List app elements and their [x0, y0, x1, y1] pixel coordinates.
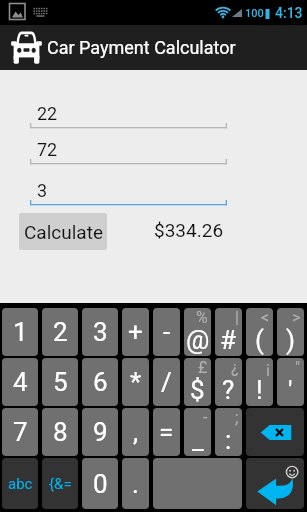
- button[interactable]: ": [277, 358, 304, 406]
- staticText: $334.26: [154, 219, 224, 241]
- button[interactable]: <: [246, 308, 273, 356]
- staticText: 1: [13, 317, 28, 347]
- staticText: _: [192, 425, 204, 455]
- staticText: :: [225, 425, 232, 455]
- staticText: -: [163, 317, 171, 347]
- button[interactable]: /: [153, 358, 180, 406]
- button[interactable]: [153, 458, 242, 509]
- button[interactable]: £: [184, 358, 211, 406]
- button[interactable]: 3: [82, 308, 118, 356]
- staticText: $: [190, 375, 205, 405]
- button[interactable]: *: [122, 358, 149, 406]
- button[interactable]: ¿: [215, 358, 242, 406]
- button[interactable]: 6: [82, 358, 118, 406]
- button[interactable]: abc: [2, 458, 38, 509]
- staticText: ;: [235, 408, 239, 427]
- button[interactable]: 9: [82, 408, 118, 456]
- staticText: 0: [93, 469, 108, 499]
- staticText: *: [130, 367, 142, 397]
- button[interactable]: 7: [2, 408, 38, 456]
- button[interactable]: 0: [82, 458, 118, 509]
- staticText: ¿: [231, 358, 239, 377]
- button[interactable]: +: [122, 308, 149, 356]
- staticText: -: [203, 408, 208, 427]
- staticText: 100: [245, 7, 264, 20]
- staticText: 7: [13, 417, 28, 447]
- staticText: 8: [53, 417, 68, 447]
- staticText: 4:13: [275, 5, 303, 21]
- staticText: 72: [37, 139, 58, 160]
- button[interactable]: |: [215, 308, 242, 356]
- staticText: 6: [93, 367, 108, 397]
- staticText: ": [295, 358, 301, 377]
- staticText: 3: [37, 180, 48, 201]
- button[interactable]: 2: [42, 308, 78, 356]
- button[interactable]: Enter: [246, 458, 304, 509]
- staticText: 22: [37, 103, 58, 124]
- button[interactable]: =: [153, 408, 180, 456]
- button[interactable]: ,: [122, 408, 149, 456]
- staticText: ': [288, 375, 293, 405]
- staticText: ?: [222, 375, 235, 405]
- button[interactable]: Delete: [246, 408, 304, 456]
- staticText: .: [132, 469, 139, 499]
- staticText: 3: [93, 317, 108, 347]
- staticText: Car Payment Calculator: [47, 37, 236, 58]
- staticText: (: [255, 325, 264, 355]
- button[interactable]: -: [184, 408, 211, 456]
- staticText: abc: [8, 475, 33, 493]
- staticText: >: [292, 308, 301, 327]
- button[interactable]: ;: [215, 408, 242, 456]
- button[interactable]: >: [277, 308, 304, 356]
- staticText: Calculate: [24, 221, 103, 243]
- staticText: 9: [93, 417, 108, 447]
- staticText: {&=: [49, 475, 72, 493]
- button[interactable]: {&=: [42, 458, 78, 509]
- staticText: @: [186, 325, 210, 355]
- staticText: +: [128, 317, 143, 347]
- button[interactable]: 5: [42, 358, 78, 406]
- staticText: ¡: [266, 358, 270, 377]
- staticText: 2: [53, 317, 68, 347]
- button[interactable]: 8: [42, 408, 78, 456]
- staticText: 4: [13, 367, 28, 397]
- staticText: =: [159, 417, 174, 447]
- staticText: <: [261, 308, 270, 327]
- button[interactable]: 1: [2, 308, 38, 356]
- staticText: |: [235, 308, 239, 327]
- staticText: /: [161, 367, 172, 397]
- button[interactable]: 4: [2, 358, 38, 406]
- button[interactable]: -: [153, 308, 180, 356]
- staticText: £: [198, 358, 208, 377]
- button[interactable]: .: [122, 458, 149, 509]
- staticText: ,: [133, 417, 139, 447]
- staticText: #: [220, 325, 237, 355]
- button[interactable]: %: [184, 308, 211, 356]
- staticText: 5: [53, 367, 68, 397]
- staticText: ): [286, 325, 296, 355]
- button[interactable]: ¡: [246, 358, 273, 406]
- button[interactable]: Calculate: [19, 213, 107, 250]
- staticText: !: [256, 375, 263, 405]
- staticText: %: [196, 308, 208, 327]
